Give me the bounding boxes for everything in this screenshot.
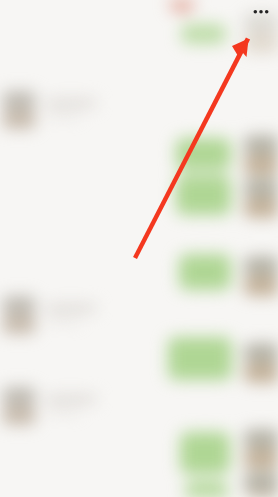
button[interactable]: More options — [246, 0, 272, 24]
